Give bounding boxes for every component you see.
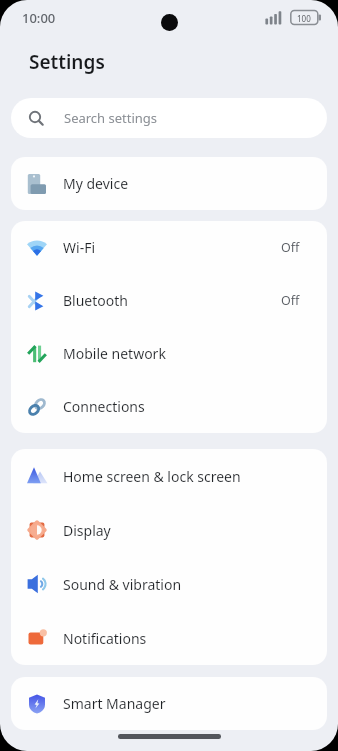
staticText: Display bbox=[63, 521, 111, 540]
staticText: Bluetooth bbox=[63, 291, 128, 310]
staticText: 100 bbox=[297, 13, 311, 24]
staticText: Settings bbox=[29, 49, 105, 75]
staticText: Search settings bbox=[64, 109, 158, 127]
staticText: Mobile network bbox=[63, 344, 166, 363]
staticText: Home screen & lock screen bbox=[63, 467, 241, 486]
staticText: Sound & vibration bbox=[63, 575, 182, 594]
staticText: Off bbox=[281, 292, 300, 309]
staticText: Off bbox=[281, 239, 300, 256]
staticText: 10:00 bbox=[22, 9, 56, 27]
staticText: Smart Manager bbox=[63, 694, 166, 713]
staticText: Notifications bbox=[63, 629, 147, 648]
staticText: Wi-Fi bbox=[63, 238, 96, 257]
staticText: Connections bbox=[63, 397, 145, 416]
staticText: My device bbox=[63, 174, 129, 193]
